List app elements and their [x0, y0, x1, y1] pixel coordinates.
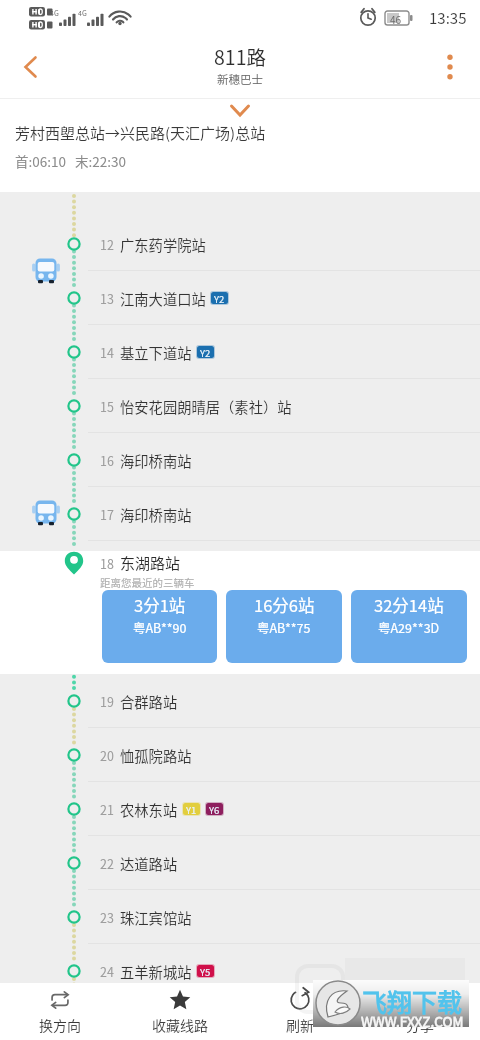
staticText: 广东药学院站 [120, 234, 206, 255]
staticText: 换方向 [39, 1015, 81, 1035]
staticText: 15 [100, 397, 114, 415]
staticText: 16分6站 [254, 593, 315, 617]
staticText: 3分1站 [134, 593, 186, 617]
staticText: 22 [100, 854, 114, 872]
staticText: 飞翔下载 [362, 983, 463, 1019]
staticText: 达道路站 [120, 853, 178, 874]
staticText: 18 [100, 554, 114, 572]
button[interactable]: Back [0, 36, 60, 98]
staticText: 17 [100, 505, 114, 523]
staticText: 20 [100, 746, 114, 764]
button[interactable]: 14 [0, 325, 480, 379]
button[interactable]: 3分1站 [102, 590, 217, 663]
staticText: 12 [100, 235, 114, 253]
button[interactable]: 收藏线路 [120, 983, 240, 1040]
staticText: 江南大道口站 [120, 288, 206, 309]
staticText: 21 [100, 800, 114, 818]
staticText: WWW.FXXZ.COM [361, 1011, 464, 1031]
staticText: 粤AB**90 [133, 618, 187, 636]
staticText: 东湖路站 [120, 552, 181, 574]
staticText: Y5 [200, 965, 211, 977]
staticText: 粤A29**3D [378, 618, 440, 636]
staticText: 粤AB**75 [257, 618, 311, 636]
staticText: 4G [78, 8, 87, 18]
staticText: 32分14站 [374, 593, 444, 617]
staticText: 新穗巴士 [217, 71, 263, 88]
staticText: 16 [100, 451, 114, 469]
staticText: Y1 [186, 803, 197, 815]
staticText: 24 [100, 962, 114, 980]
button[interactable]: 22 [0, 836, 480, 890]
staticText: 珠江宾馆站 [120, 907, 192, 928]
button[interactable]: 17 [0, 487, 480, 541]
button[interactable]: 13 [0, 271, 480, 325]
button[interactable]: Expand route [0, 99, 480, 122]
staticText: 14 [100, 343, 114, 361]
button[interactable]: 刷新 [240, 983, 360, 1040]
staticText: 首:06:10 末:22:30 [15, 151, 127, 171]
button[interactable]: 21 [0, 782, 480, 836]
staticText: 五羊新城站 [120, 961, 192, 982]
staticText: 合群路站 [120, 691, 178, 712]
staticText: 海印桥南站 [120, 504, 192, 525]
staticText: Y2 [214, 292, 225, 304]
button[interactable]: 32分14站 [351, 590, 467, 663]
button[interactable]: 16 [0, 433, 480, 487]
staticText: 46 [390, 12, 402, 26]
button[interactable]: 19 [0, 674, 480, 728]
staticText: 19 [100, 692, 114, 710]
staticText: 分享 [406, 1015, 434, 1035]
button[interactable]: 23 [0, 890, 480, 944]
button[interactable]: More options [420, 36, 480, 98]
staticText: 4G [50, 8, 59, 18]
staticText: Y2 [200, 346, 211, 358]
staticText: 海印桥南站 [120, 450, 192, 471]
staticText: 恤孤院路站 [120, 745, 192, 766]
staticText: 怡安花园朗晴居（素社）站 [120, 396, 292, 417]
button[interactable]: 16分6站 [226, 590, 342, 663]
staticText: 距离您最近的三辆车 [100, 575, 195, 590]
button[interactable]: 24 [0, 944, 480, 998]
staticText: 811路 [214, 42, 266, 70]
staticText: 收藏线路 [152, 1015, 208, 1035]
staticText: 农林东站 [120, 799, 178, 820]
button[interactable]: 分享 [360, 983, 480, 1040]
button[interactable]: 20 [0, 728, 480, 782]
staticText: 刷新 [286, 1015, 314, 1035]
button[interactable]: 12 [0, 217, 480, 271]
staticText: Y6 [209, 803, 220, 815]
staticText: 13 [100, 289, 114, 307]
staticText: 基立下道站 [120, 342, 192, 363]
staticText: 13:35 [429, 7, 467, 29]
staticText: 23 [100, 908, 114, 926]
button[interactable]: 换方向 [0, 983, 120, 1040]
button[interactable]: 15 [0, 379, 480, 433]
staticText: 芳村西塱总站→兴民路(天汇广场)总站 [15, 122, 266, 144]
